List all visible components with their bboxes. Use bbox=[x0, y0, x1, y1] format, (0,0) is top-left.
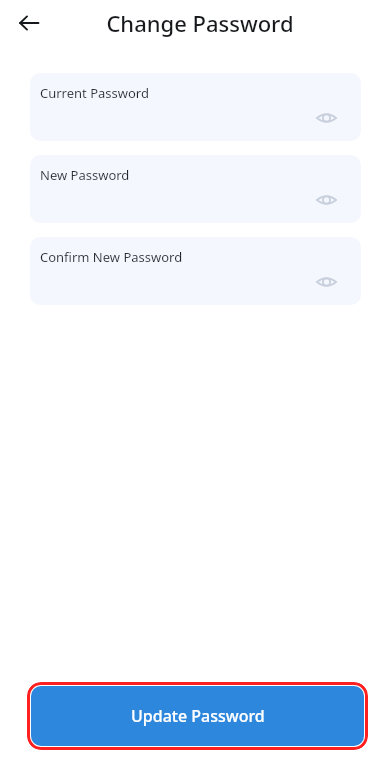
staticText: Update Password bbox=[131, 705, 265, 727]
button[interactable]: Show password bbox=[313, 269, 339, 295]
staticText: Change Password bbox=[106, 8, 294, 38]
staticText: Current Password bbox=[40, 84, 149, 102]
button[interactable]: Update Password bbox=[31, 686, 364, 746]
button[interactable]: Confirm New Password bbox=[30, 237, 361, 305]
button[interactable]: Show password bbox=[313, 105, 339, 131]
button[interactable]: Current Password bbox=[30, 73, 361, 141]
staticText: Confirm New Password bbox=[40, 248, 183, 266]
button[interactable]: Back bbox=[10, 4, 48, 42]
button[interactable]: Show password bbox=[313, 187, 339, 213]
button[interactable]: New Password bbox=[30, 155, 361, 223]
staticText: New Password bbox=[40, 166, 130, 184]
